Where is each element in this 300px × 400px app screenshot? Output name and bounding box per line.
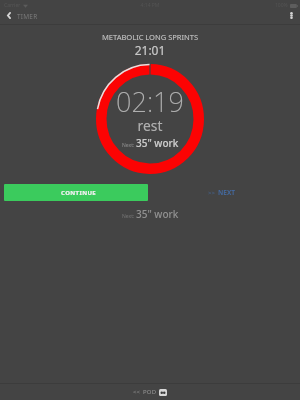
staticText: 100% xyxy=(275,2,288,9)
staticText: NEXT xyxy=(218,188,236,197)
staticText: Next: xyxy=(122,213,135,220)
staticText: 4:14 PM xyxy=(0,2,300,9)
staticText: Carrier xyxy=(4,2,21,9)
button[interactable]: More options xyxy=(282,6,300,25)
button[interactable]: CONTINUE xyxy=(4,184,148,201)
button[interactable]: >> xyxy=(205,184,239,201)
staticText: 02:19 xyxy=(96,83,204,120)
staticText: POD xyxy=(143,388,157,396)
button[interactable]: TIMER xyxy=(0,6,42,25)
staticText: 35" work xyxy=(136,136,179,150)
button[interactable]: << xyxy=(130,386,170,398)
staticText: TIMER xyxy=(17,12,38,21)
staticText: << xyxy=(133,388,140,396)
staticText: >> xyxy=(208,189,215,197)
staticText: CONTINUE xyxy=(61,189,97,197)
staticText: 35" work xyxy=(136,207,179,221)
staticText: Next: xyxy=(122,142,135,149)
staticText: 21:01 xyxy=(0,42,300,58)
staticText: rest xyxy=(96,116,204,135)
staticText: METABOLIC LONG SPRINTS xyxy=(0,32,300,42)
